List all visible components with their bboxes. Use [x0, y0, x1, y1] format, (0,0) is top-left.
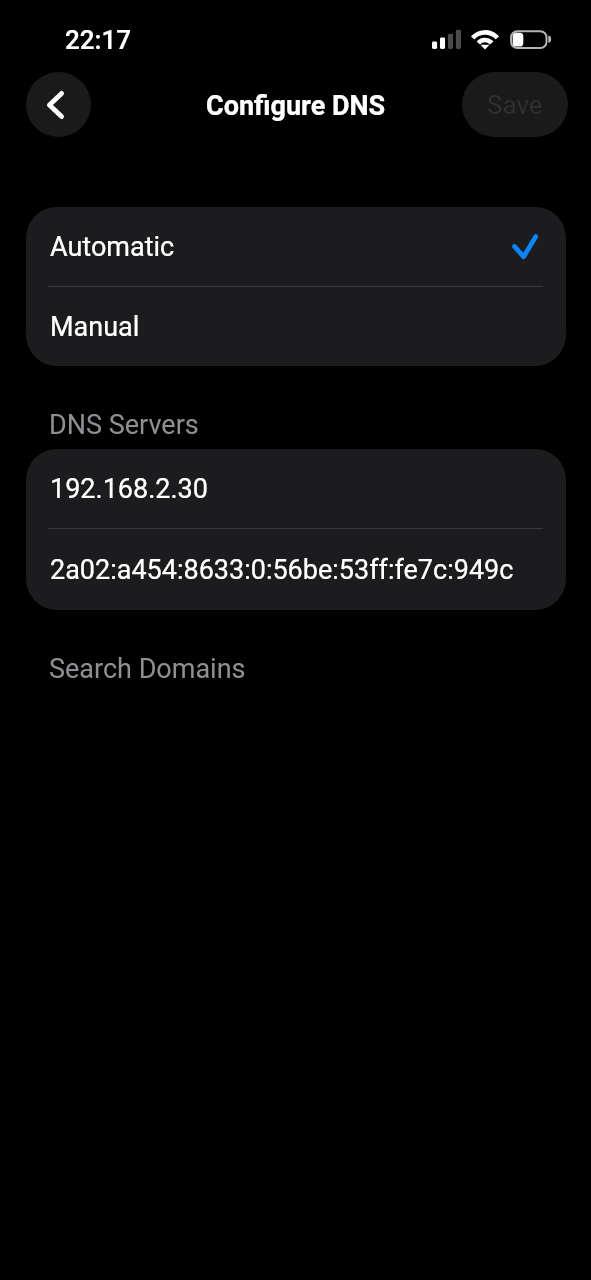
- staticText: Manual: [50, 311, 140, 343]
- staticText: 22:17: [65, 25, 132, 55]
- staticText: DNS Servers: [49, 409, 199, 441]
- button[interactable]: Back: [26, 72, 91, 137]
- button[interactable]: 192.168.2.30: [26, 449, 566, 528]
- button[interactable]: 2a02:a454:8633:0:56be:53ff:fe7c:949c: [26, 529, 566, 610]
- button[interactable]: Manual: [26, 287, 566, 366]
- staticText: Save: [487, 90, 543, 120]
- staticText: 192.168.2.30: [50, 473, 208, 505]
- staticText: Configure DNS: [206, 90, 386, 122]
- staticText: Search Domains: [49, 653, 246, 685]
- button[interactable]: Save: [462, 72, 568, 137]
- button[interactable]: Automatic: [26, 207, 566, 286]
- staticText: 2a02:a454:8633:0:56be:53ff:fe7c:949c: [50, 554, 514, 586]
- staticText: Automatic: [50, 231, 175, 263]
